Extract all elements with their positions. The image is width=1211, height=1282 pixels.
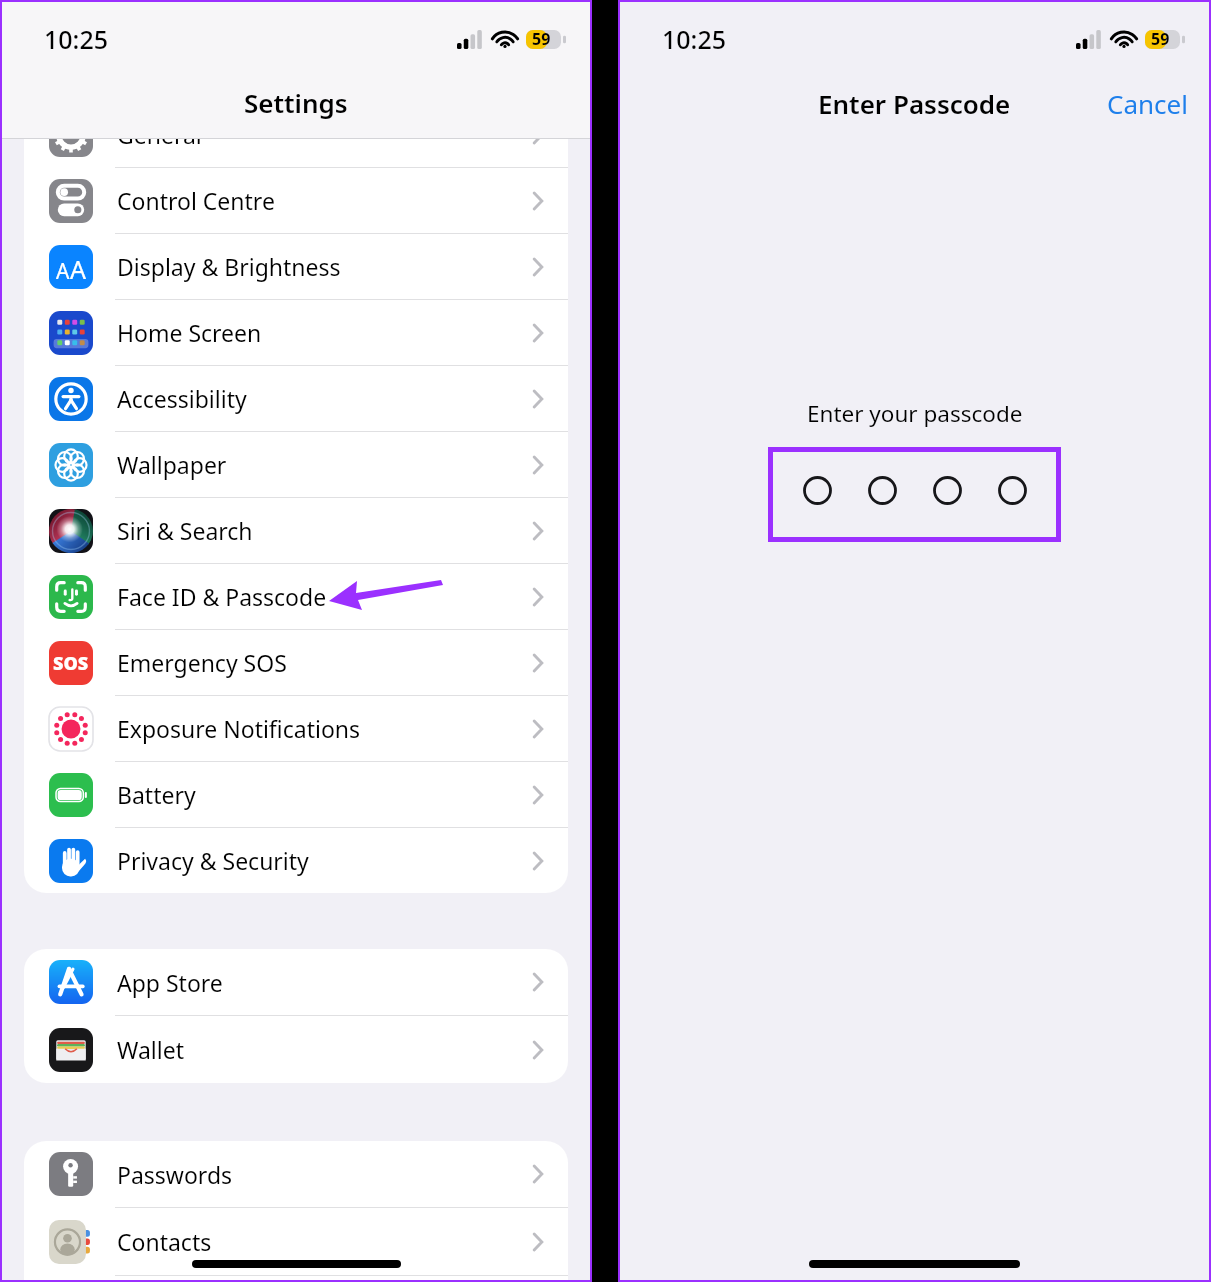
staticText: Enter Passcode (818, 86, 1011, 121)
staticText: A (56, 257, 70, 286)
staticText: Enter your passcode (807, 398, 1023, 429)
staticText: Cancel (1107, 86, 1188, 121)
button[interactable]: Wallet (24, 1016, 568, 1083)
staticText: Wallpaper (117, 449, 507, 480)
staticText: 10:25 (44, 22, 109, 56)
staticText: Siri & Search (117, 515, 507, 546)
staticText: Battery (117, 779, 507, 810)
button[interactable]: Passcode entry field (768, 447, 1061, 542)
button[interactable]: Accessibility (24, 366, 568, 432)
staticText: Contacts (117, 1226, 507, 1257)
button[interactable]: Privacy & Security (24, 828, 568, 893)
button[interactable]: Home Screen (24, 300, 568, 366)
staticText: Emergency SOS (117, 647, 507, 678)
button[interactable]: Wallpaper (24, 432, 568, 498)
button[interactable]: A (24, 234, 568, 300)
button[interactable]: General (24, 102, 568, 168)
staticText: A (70, 252, 86, 286)
staticText: General (117, 119, 507, 150)
button[interactable]: Face ID & Passcode (24, 564, 568, 630)
button[interactable]: SOS (24, 630, 568, 696)
staticText: 59 (532, 28, 551, 50)
staticText: Exposure Notifications (117, 713, 507, 744)
staticText: Settings (244, 85, 348, 120)
staticText: Wallet (117, 1034, 507, 1065)
button[interactable]: Passwords (24, 1141, 568, 1208)
staticText: Home Screen (117, 317, 507, 348)
staticText: SOS (53, 651, 89, 676)
staticText: Display & Brightness (117, 251, 507, 282)
button[interactable]: Siri & Search (24, 498, 568, 564)
button[interactable]: Cancel (1099, 82, 1196, 125)
staticText: Passwords (117, 1159, 507, 1190)
staticText: 10:25 (662, 22, 727, 56)
staticText: Privacy & Security (117, 845, 507, 876)
staticText: Accessibility (117, 383, 507, 414)
button[interactable]: App Store (24, 949, 568, 1016)
staticText: App Store (117, 967, 507, 998)
button[interactable]: Battery (24, 762, 568, 828)
staticText: Face ID & Passcode (117, 581, 507, 612)
button[interactable]: Control Centre (24, 168, 568, 234)
button[interactable]: Exposure Notifications (24, 696, 568, 762)
staticText: 59 (1151, 28, 1170, 50)
staticText: Control Centre (117, 185, 507, 216)
button[interactable]: Contacts (24, 1208, 568, 1276)
